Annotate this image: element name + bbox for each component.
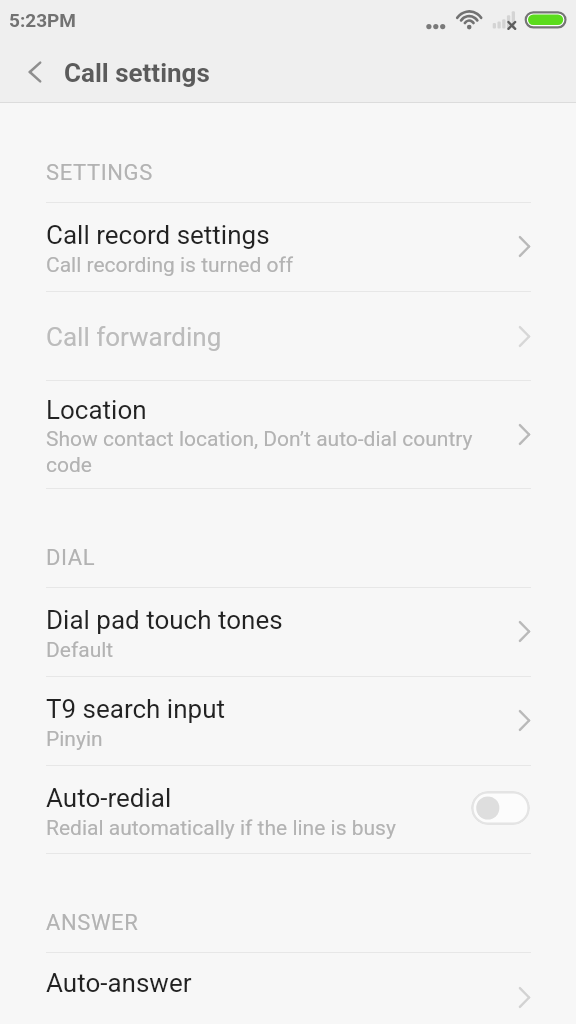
staticText: Call recording is turned off (46, 253, 294, 278)
staticText: T9 search input (46, 694, 225, 724)
staticText: Call settings (64, 58, 210, 88)
button[interactable]: T9 search input (0, 677, 576, 766)
button[interactable]: Call forwarding (0, 292, 576, 381)
button[interactable]: Auto-answer (0, 953, 576, 1024)
staticText: SETTINGS (46, 160, 153, 186)
staticText: Show contact location, Don’t auto-dial c… (46, 427, 496, 477)
staticText: Location (46, 395, 147, 425)
button[interactable]: Auto-redial off (471, 791, 530, 825)
staticText: Dial pad touch tones (46, 605, 283, 635)
staticText: Default (46, 638, 114, 663)
button[interactable]: Back (11, 48, 59, 96)
staticText: Auto-answer (46, 968, 192, 998)
staticText: Redial automatically if the line is busy (46, 816, 396, 841)
staticText: Pinyin (46, 727, 103, 752)
button[interactable]: Dial pad touch tones (0, 588, 576, 677)
staticText: ANSWER (46, 910, 139, 936)
staticText: Call forwarding (46, 322, 222, 352)
button[interactable]: Location (0, 381, 576, 489)
button[interactable]: Call record settings (0, 203, 576, 292)
staticText: 5:23PM (9, 9, 76, 31)
button[interactable]: Auto-redial (0, 766, 576, 854)
staticText: DIAL (46, 545, 96, 571)
staticText: Auto-redial (46, 783, 172, 813)
staticText: Call record settings (46, 220, 270, 250)
